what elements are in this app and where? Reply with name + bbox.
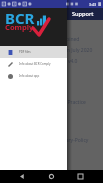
staticText: Workplace Bulletin July 2020 — [26, 47, 93, 54]
staticText: 3:43 — [89, 2, 97, 7]
staticText: PDF files — [19, 50, 31, 54]
staticText: Support — [72, 10, 94, 18]
staticText: Info about app — [19, 74, 40, 78]
button[interactable]: Info about app — [0, 70, 67, 82]
staticText: Policy-Combined — [40, 36, 80, 43]
button[interactable]: Policy v4.0 — [0, 56, 103, 67]
button[interactable]: Policy-Combined — [0, 34, 103, 45]
button[interactable]: Workplace Bulletin July 2020 — [0, 45, 103, 56]
button[interactable]: Standard-Disciplinary-Policy — [0, 135, 103, 146]
button[interactable]: Back — [16, 170, 29, 183]
button[interactable]: Code of Practice — [0, 97, 103, 108]
staticText: BCR — [5, 8, 35, 28]
staticText: Info about BCR Comply — [19, 62, 51, 66]
staticText: Standard-Disciplinary-Policy — [23, 137, 89, 144]
staticText: Policy v4.0 — [53, 58, 78, 65]
button[interactable]: Info about BCR Comply — [0, 58, 67, 70]
staticText: Comply — [5, 22, 34, 32]
button[interactable]: Home — [45, 170, 58, 183]
button[interactable]: PDF files — [0, 46, 67, 58]
button[interactable]: Recent apps — [74, 170, 87, 183]
staticText: Code of Practice — [48, 99, 86, 106]
